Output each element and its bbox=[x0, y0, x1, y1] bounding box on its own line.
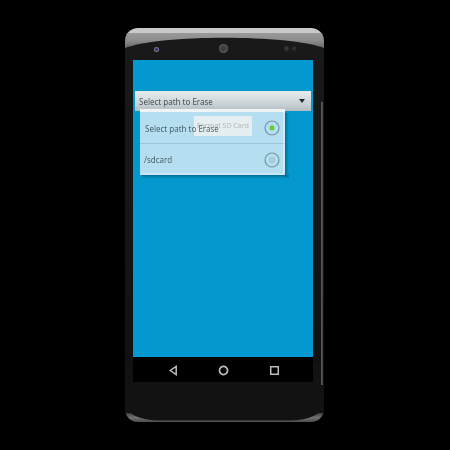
staticText: Select path to Erase bbox=[145, 123, 219, 134]
staticText: /sdcard bbox=[144, 154, 173, 165]
button[interactable]: Recent apps bbox=[263, 359, 285, 381]
button[interactable]: Back bbox=[162, 359, 184, 381]
staticText: Format SD Card bbox=[197, 121, 249, 131]
button[interactable]: Select path to Erase bbox=[135, 91, 311, 111]
button[interactable] bbox=[140, 112, 285, 143]
button[interactable] bbox=[140, 144, 285, 175]
staticText: Select path to Erase bbox=[139, 96, 213, 107]
button[interactable]: Home bbox=[212, 359, 234, 381]
